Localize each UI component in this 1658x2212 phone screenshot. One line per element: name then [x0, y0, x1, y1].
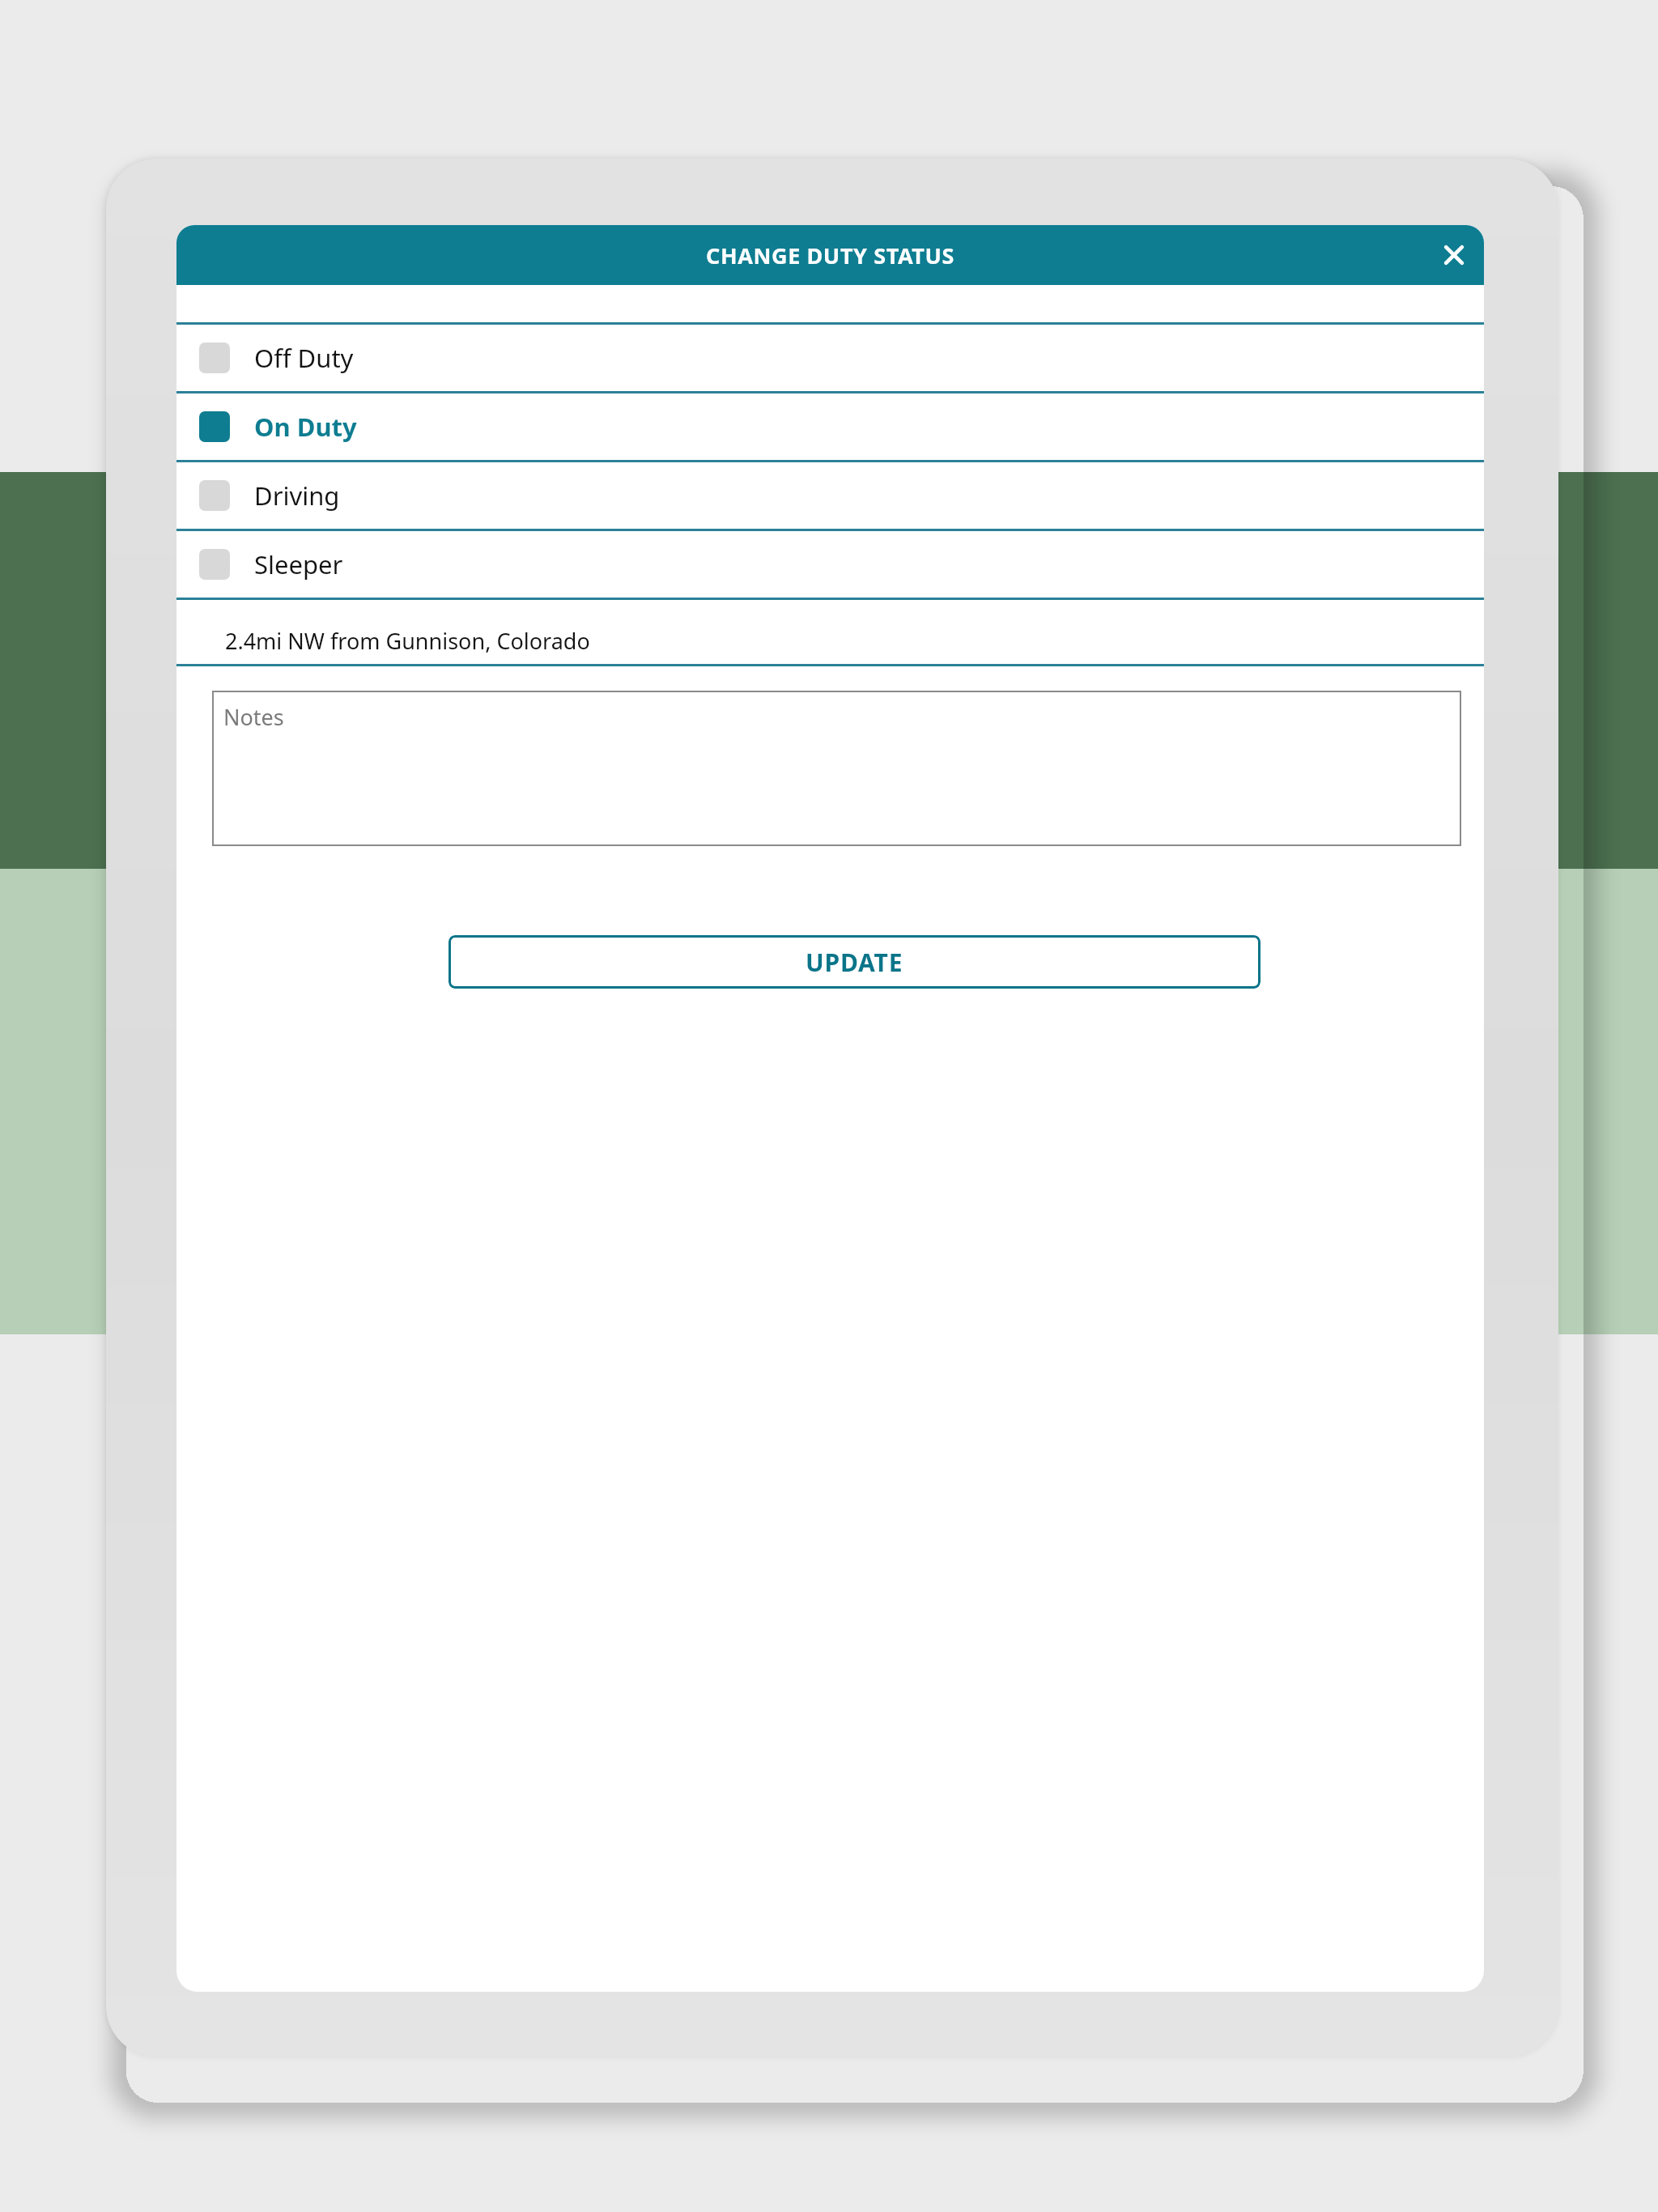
staticText: CHANGE DUTY STATUS — [176, 240, 1484, 270]
button[interactable]: UPDATE — [449, 935, 1261, 989]
staticText: On Duty — [254, 410, 357, 444]
button[interactable]: On Duty — [176, 393, 1484, 460]
staticText: Notes — [223, 702, 284, 732]
staticText: Off Duty — [254, 341, 354, 375]
staticText: UPDATE — [806, 946, 903, 979]
button[interactable]: Notes — [212, 691, 1461, 846]
button[interactable]: 2.4mi NW from Gunnison, Colorado — [176, 600, 1484, 664]
button[interactable]: Driving — [176, 462, 1484, 529]
staticText: Sleeper — [254, 547, 343, 581]
button[interactable]: Close — [1424, 225, 1484, 285]
button[interactable]: Sleeper — [176, 531, 1484, 598]
button[interactable]: Off Duty — [176, 325, 1484, 391]
staticText: Driving — [254, 479, 340, 513]
staticText: 2.4mi NW from Gunnison, Colorado — [225, 626, 590, 656]
